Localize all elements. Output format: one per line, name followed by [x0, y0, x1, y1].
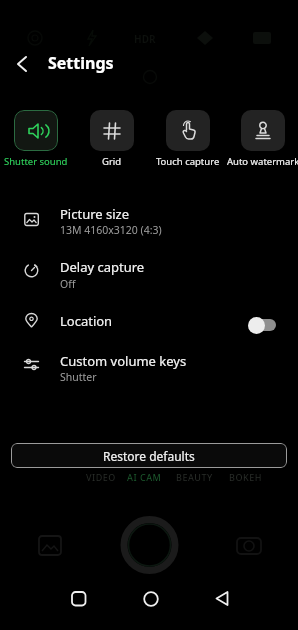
staticText: HDR	[134, 32, 156, 46]
staticText: Grid	[102, 155, 122, 168]
staticText: Auto watermark	[227, 155, 298, 168]
button[interactable]	[66, 586, 92, 612]
staticText: VIDEO	[86, 471, 116, 483]
button[interactable]: Restore defaults	[11, 443, 287, 468]
button[interactable]	[0, 302, 298, 346]
button[interactable]	[248, 314, 277, 336]
staticText: Settings	[48, 52, 114, 74]
staticText: Off	[60, 277, 76, 291]
button[interactable]	[14, 110, 58, 151]
staticText: Location	[60, 312, 113, 330]
button[interactable]	[241, 110, 285, 151]
button[interactable]	[0, 250, 298, 298]
button[interactable]	[138, 586, 164, 612]
button[interactable]	[0, 348, 298, 396]
button[interactable]	[0, 198, 298, 246]
button[interactable]	[90, 110, 134, 151]
button[interactable]	[166, 110, 210, 151]
staticText: Custom volume keys	[60, 352, 187, 370]
staticText: Restore defaults	[103, 448, 195, 464]
staticText: 13M 4160x3120 (4:3)	[60, 223, 162, 237]
staticText: Touch capture	[156, 155, 220, 168]
staticText: Delay capture	[60, 258, 145, 276]
staticText: Picture size	[60, 205, 130, 223]
staticText: BEAUTY	[176, 471, 213, 483]
staticText: AI CAM	[127, 471, 162, 483]
staticText: Shutter sound	[4, 155, 68, 168]
button[interactable]	[8, 52, 40, 76]
staticText: Shutter	[60, 370, 97, 384]
staticText: BOKEH	[229, 471, 262, 483]
button[interactable]	[209, 586, 235, 612]
